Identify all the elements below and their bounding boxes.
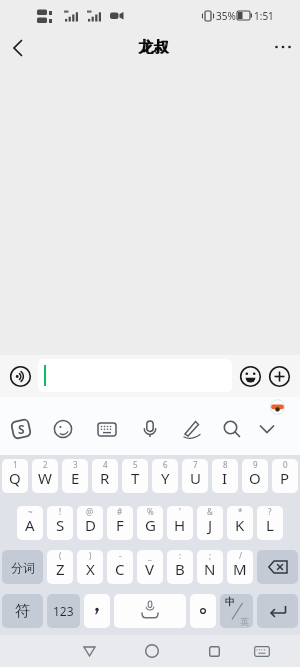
staticText: I xyxy=(222,468,228,488)
staticText: & xyxy=(207,506,213,517)
staticText: 分词 xyxy=(11,560,35,575)
staticText: : xyxy=(179,550,182,561)
button[interactable] xyxy=(257,550,298,584)
button[interactable] xyxy=(4,35,32,61)
button[interactable]: ! xyxy=(47,506,73,540)
button[interactable]: 9 xyxy=(242,459,268,493)
staticText: ' xyxy=(179,506,181,517)
button[interactable] xyxy=(91,413,123,445)
button[interactable] xyxy=(138,637,166,665)
staticText: Y xyxy=(161,468,170,488)
staticText: _ xyxy=(148,550,152,561)
staticText: 龙叔 xyxy=(138,38,168,57)
button[interactable]: 3 xyxy=(62,459,88,493)
button[interactable] xyxy=(267,364,291,388)
button[interactable]: 符 xyxy=(2,594,43,628)
button[interactable]: 中 xyxy=(220,594,253,628)
button[interactable] xyxy=(248,637,276,665)
button[interactable]: 123 xyxy=(47,594,80,628)
staticText: 0 xyxy=(283,459,288,470)
button[interactable]: # xyxy=(107,506,133,540)
staticText: 9 xyxy=(253,459,258,470)
button[interactable]: ~ xyxy=(17,506,43,540)
button[interactable]: 1 xyxy=(2,459,28,493)
staticText: V xyxy=(145,559,155,579)
staticText: D xyxy=(85,515,96,535)
staticText: Q xyxy=(9,468,21,488)
button[interactable]: ; xyxy=(197,550,223,584)
staticText: ) xyxy=(89,550,92,561)
staticText: R xyxy=(100,468,110,488)
staticText: ! xyxy=(59,506,62,517)
staticText: 4 xyxy=(103,459,108,470)
button[interactable] xyxy=(47,413,79,445)
staticText: * xyxy=(238,506,243,517)
staticText: 1 xyxy=(13,459,18,470)
staticText: S xyxy=(18,421,25,437)
staticText: ? xyxy=(268,506,272,517)
button[interactable]: 5 xyxy=(122,459,148,493)
staticText: B xyxy=(175,559,185,579)
button[interactable] xyxy=(134,413,166,445)
button[interactable]: ) xyxy=(77,550,103,584)
staticText: 7 xyxy=(193,459,198,470)
staticText: 6 xyxy=(163,459,168,470)
staticText: K xyxy=(235,515,245,535)
button[interactable]: - xyxy=(107,550,133,584)
staticText: 龙叔 xyxy=(139,38,169,57)
staticText: G xyxy=(145,515,156,535)
staticText: ( xyxy=(59,550,62,561)
button[interactable]: & xyxy=(197,506,223,540)
button[interactable] xyxy=(75,637,103,665)
staticText: T xyxy=(131,468,140,488)
button[interactable]: % xyxy=(137,506,163,540)
button[interactable]: _ xyxy=(137,550,163,584)
button[interactable]: 0 xyxy=(272,459,298,493)
button[interactable]: 分词 xyxy=(2,550,43,584)
staticText: P xyxy=(280,468,290,488)
button[interactable]: / xyxy=(227,550,253,584)
button[interactable]: S xyxy=(5,413,37,445)
staticText: 1:51 xyxy=(254,9,274,23)
button[interactable]: ? xyxy=(257,506,283,540)
button[interactable] xyxy=(238,364,262,388)
button[interactable]: : xyxy=(167,550,193,584)
staticText: 符 xyxy=(15,602,30,621)
button[interactable] xyxy=(270,34,296,60)
staticText: E xyxy=(71,468,80,488)
staticText: L xyxy=(266,515,274,535)
staticText: C xyxy=(115,559,125,579)
staticText: N xyxy=(204,559,216,579)
button[interactable] xyxy=(8,364,32,388)
button[interactable] xyxy=(251,413,283,445)
staticText: O xyxy=(249,468,261,488)
staticText: ~ xyxy=(28,506,33,517)
button[interactable] xyxy=(84,594,110,628)
staticText: ; xyxy=(209,550,212,561)
button[interactable]: * xyxy=(227,506,253,540)
button[interactable] xyxy=(38,359,232,392)
staticText: 123 xyxy=(53,603,74,619)
button[interactable] xyxy=(257,594,298,628)
button[interactable] xyxy=(176,413,208,445)
staticText: J xyxy=(208,515,213,535)
button[interactable] xyxy=(114,594,186,628)
button[interactable]: @ xyxy=(77,506,103,540)
button[interactable] xyxy=(200,637,228,665)
button[interactable] xyxy=(216,413,248,445)
button[interactable]: 7 xyxy=(182,459,208,493)
staticText: W xyxy=(38,468,52,488)
button[interactable]: 6 xyxy=(152,459,178,493)
staticText: 英 xyxy=(240,616,249,627)
staticText: # xyxy=(117,506,123,517)
button[interactable] xyxy=(190,594,216,628)
staticText: 2 xyxy=(43,459,48,470)
staticText: @ xyxy=(86,506,94,517)
staticText: / xyxy=(239,550,242,561)
button[interactable]: ' xyxy=(167,506,193,540)
button[interactable]: 2 xyxy=(32,459,58,493)
button[interactable]: 8 xyxy=(212,459,238,493)
button[interactable]: ( xyxy=(47,550,73,584)
button[interactable]: 4 xyxy=(92,459,118,493)
staticText: - xyxy=(119,550,122,561)
